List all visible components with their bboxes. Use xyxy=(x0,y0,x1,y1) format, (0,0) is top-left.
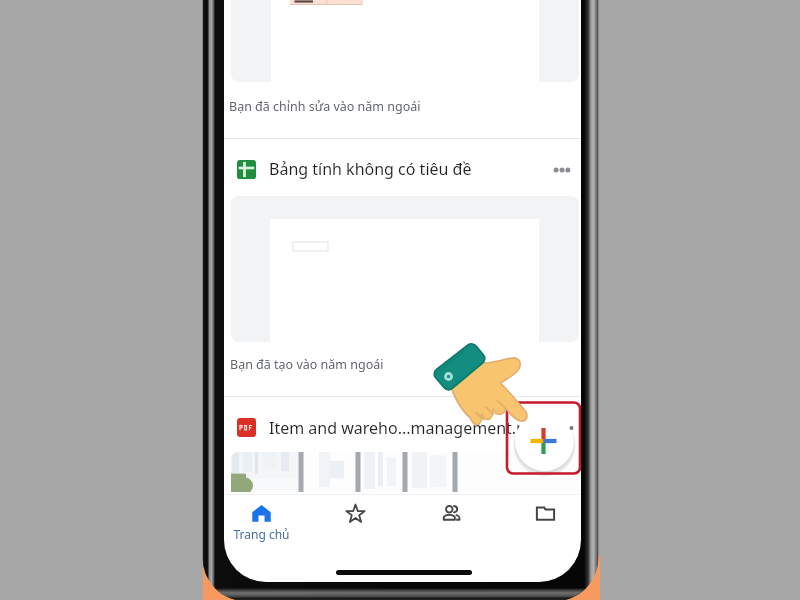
button[interactable]: Item and wareho...management.p xyxy=(224,401,581,454)
staticText: Item and wareho...management.p xyxy=(269,417,526,439)
button[interactable]: Bảng tính không có tiêu đề xyxy=(224,143,581,195)
staticText: Bạn đã tạo vào năm ngoái xyxy=(230,356,384,373)
button[interactable]: More options xyxy=(543,150,581,188)
button[interactable] xyxy=(231,0,579,82)
staticText: Bạn đã chỉnh sửa vào năm ngoái xyxy=(229,98,421,115)
staticText: Bảng tính không có tiêu đề xyxy=(269,158,472,180)
button[interactable]: My files xyxy=(501,497,581,553)
staticText: Trang chủ xyxy=(233,526,290,542)
button[interactable]: Shared with me xyxy=(407,497,495,553)
button[interactable]: Starred xyxy=(311,497,399,553)
button[interactable]: Trang chủ xyxy=(224,497,305,553)
button[interactable] xyxy=(231,196,579,342)
